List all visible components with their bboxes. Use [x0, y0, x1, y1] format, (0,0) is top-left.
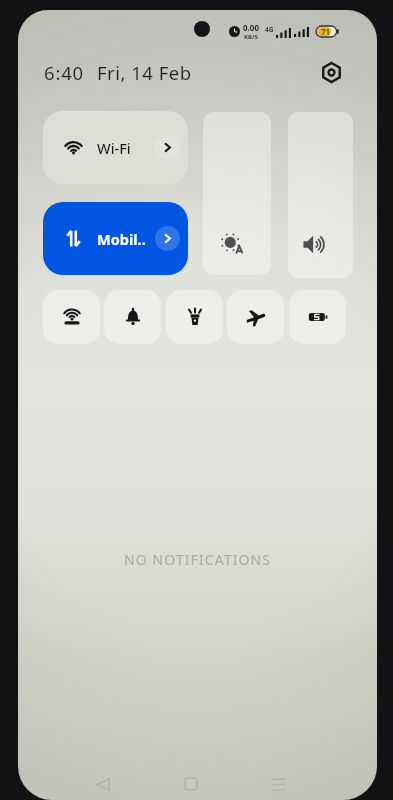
button[interactable]: Settings	[315, 56, 347, 88]
button[interactable]: Recents	[263, 768, 295, 800]
button[interactable]: Ringer	[104, 290, 161, 344]
staticText: 0.00	[243, 22, 259, 33]
staticText: 6:40	[44, 60, 84, 85]
button[interactable]: Hotspot	[43, 290, 100, 344]
button[interactable]: Home	[175, 768, 207, 800]
staticText: Wi-Fi	[97, 138, 131, 158]
button[interactable]: Battery saver	[289, 290, 346, 344]
button[interactable]: Back	[87, 768, 119, 800]
staticText: Mobil..	[97, 229, 146, 249]
staticText: Fri, 14 Feb	[97, 60, 192, 85]
staticText: NO NOTIFICATIONS	[124, 550, 272, 569]
button[interactable]: Brightness	[203, 112, 271, 275]
button[interactable]: Volume	[288, 112, 353, 278]
staticText: 4G	[265, 25, 274, 34]
button[interactable]: Mobil..	[43, 202, 188, 275]
staticText: 71	[321, 26, 331, 37]
button[interactable]: Airplane mode	[227, 290, 284, 344]
button[interactable]: Flashlight	[166, 290, 223, 344]
staticText: KB/S	[244, 33, 258, 41]
button[interactable]: Wi-Fi	[43, 111, 188, 184]
